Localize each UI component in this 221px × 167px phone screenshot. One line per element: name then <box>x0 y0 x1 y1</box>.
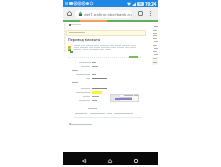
button[interactable]: Home <box>65 9 74 18</box>
button[interactable]: Tabs <box>136 9 145 18</box>
staticText: 19:24 <box>145 1 157 7</box>
staticText: del1.online.sberbank.ru <box>84 11 132 17</box>
button[interactable]: Recent apps <box>131 156 141 166</box>
button[interactable]: Back <box>79 156 89 166</box>
button[interactable]: del1.online.sberbank.ru <box>75 10 132 18</box>
button[interactable]: More options <box>146 9 155 18</box>
staticText: Перевод клиента <box>68 37 101 42</box>
staticText: 60 <box>139 2 143 6</box>
button[interactable]: Home <box>105 156 115 166</box>
